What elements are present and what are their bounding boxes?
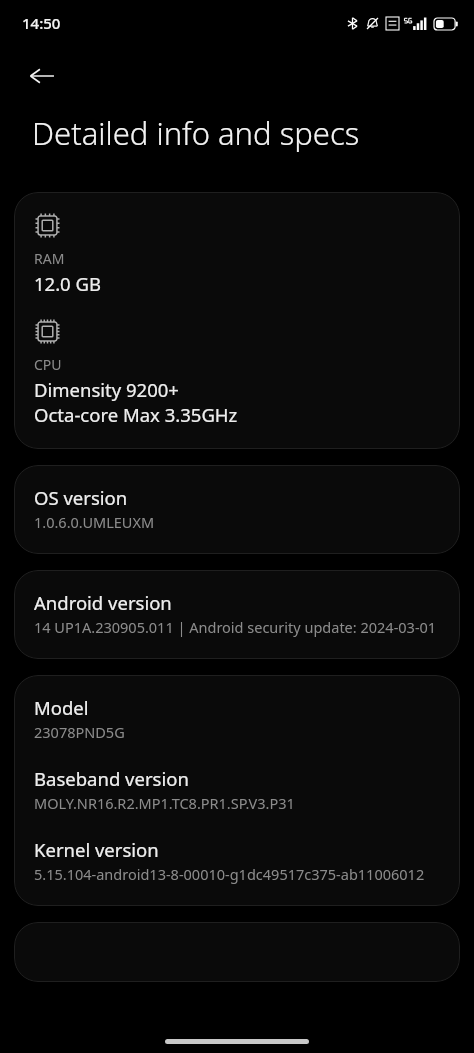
button[interactable]: Model — [14, 675, 460, 906]
staticText: OS version — [34, 485, 128, 510]
staticText: 14:50 — [22, 13, 61, 33]
staticText: Model — [34, 695, 89, 720]
staticText: Octa-core Max 3.35GHz — [34, 402, 238, 427]
button[interactable] — [14, 922, 460, 982]
staticText: Dimensity 9200+ — [34, 377, 179, 402]
staticText: 5.15.104-android13-8-00010-g1dc49517c375… — [34, 864, 425, 884]
staticText: 1.0.6.0.UMLEUXM — [34, 512, 155, 532]
staticText: RAM — [34, 249, 65, 268]
staticText: Android version — [34, 590, 172, 615]
staticText: MOLY.NR16.R2.MP1.TC8.PR1.SP.V3.P31 — [34, 793, 295, 813]
staticText: Baseband version — [34, 766, 189, 791]
staticText: Detailed info and specs — [32, 112, 360, 154]
staticText: Kernel version — [34, 837, 159, 862]
button[interactable]: Back — [18, 52, 66, 100]
staticText: 14 UP1A.230905.011 | Android security up… — [34, 617, 437, 637]
staticText: CPU — [34, 355, 62, 374]
staticText: 12.0 GB — [34, 271, 102, 296]
button[interactable]: RAM — [14, 192, 460, 449]
button[interactable]: OS version — [14, 465, 460, 554]
button[interactable]: Android version — [14, 570, 460, 659]
staticText: 23078PND5G — [34, 722, 125, 742]
